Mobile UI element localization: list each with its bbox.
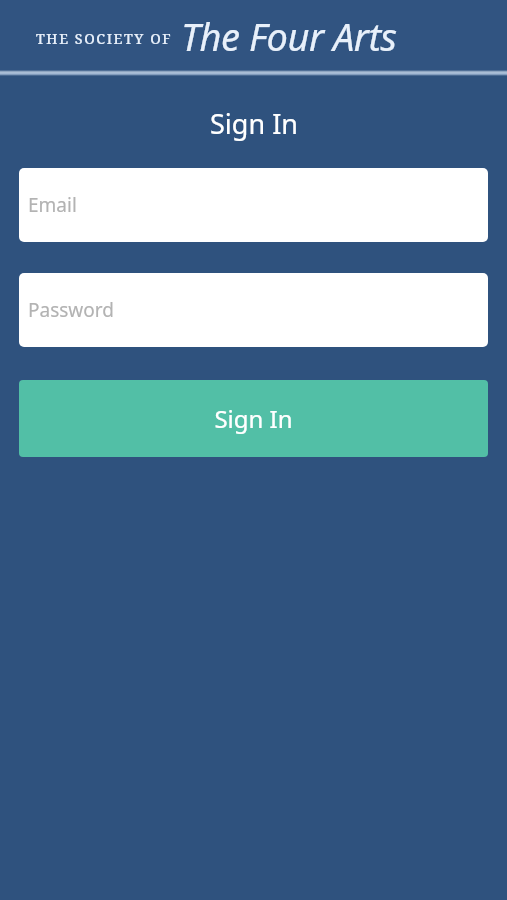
button[interactable]: Sign In	[19, 380, 488, 457]
staticText: Password	[28, 297, 114, 323]
staticText: Sign In	[210, 105, 298, 142]
staticText: The Four Arts	[181, 10, 397, 62]
staticText: THE SOCIETY OF	[36, 29, 173, 48]
staticText: Email	[28, 192, 77, 218]
button[interactable]: Email	[19, 168, 488, 242]
staticText: Sign In	[214, 402, 293, 435]
button[interactable]: Password	[19, 273, 488, 347]
